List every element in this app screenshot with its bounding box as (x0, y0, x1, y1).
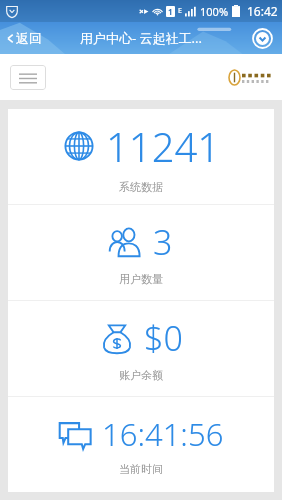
staticText: 100% (200, 4, 229, 19)
staticText: 1 (168, 6, 173, 17)
button[interactable]: More options (250, 26, 274, 50)
staticText: $0 (144, 315, 183, 361)
staticText: E (178, 6, 182, 16)
staticText: 16:41:56 (102, 413, 224, 455)
button[interactable]: Menu (10, 65, 46, 90)
staticText: 账户余额 (119, 368, 163, 382)
staticText: 3 (153, 219, 173, 265)
button[interactable]: 11241 (8, 109, 274, 204)
button[interactable]: 返回 (0, 26, 48, 50)
staticText: 当前时间 (119, 462, 163, 476)
staticText: 返回 (16, 30, 42, 46)
staticText: 系统数据 (119, 180, 163, 194)
staticText: 用户数量 (119, 272, 163, 286)
button[interactable]: 3 (8, 205, 274, 300)
staticText: 用户中心- 云起社工... (80, 29, 203, 47)
button[interactable]: $0 (8, 301, 274, 396)
staticText: 16:42 (247, 3, 278, 19)
button[interactable]: Logo (229, 70, 272, 85)
staticText: 11241 (106, 119, 221, 173)
button[interactable]: 16:41:56 (8, 397, 274, 492)
